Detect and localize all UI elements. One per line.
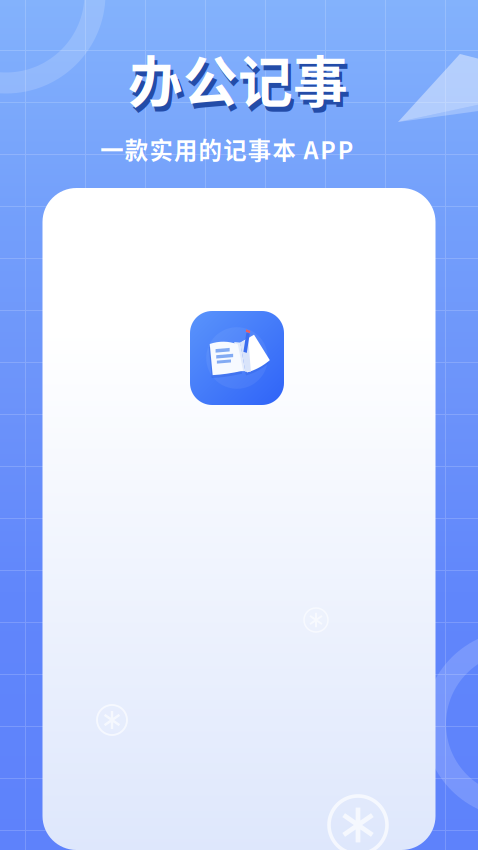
staticText: 一款实用的记事本 APP xyxy=(100,132,354,166)
staticText: 办公记事 xyxy=(131,43,351,123)
button[interactable]: 办公记事 xyxy=(190,311,284,405)
staticText: 办公记事 xyxy=(128,38,348,118)
